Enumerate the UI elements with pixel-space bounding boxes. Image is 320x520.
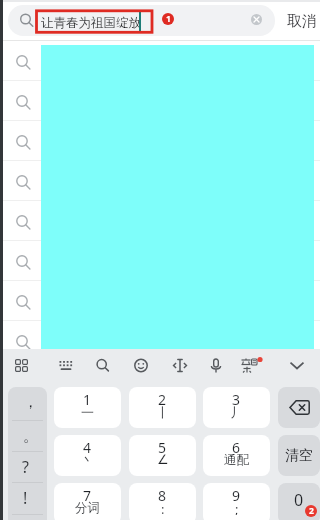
staticText: 5 xyxy=(158,438,167,454)
staticText: ? xyxy=(22,456,29,478)
button[interactable]: 清空 xyxy=(278,435,320,476)
staticText: : xyxy=(161,500,165,515)
button[interactable]: ! xyxy=(8,482,47,513)
staticText: 0 xyxy=(294,489,304,509)
button[interactable] xyxy=(81,349,120,382)
button[interactable] xyxy=(280,349,320,382)
staticText: 2 xyxy=(158,390,167,406)
button[interactable] xyxy=(278,387,320,428)
button[interactable]: ， xyxy=(8,388,47,419)
staticText: ; xyxy=(235,500,239,515)
button[interactable] xyxy=(200,349,240,382)
button[interactable] xyxy=(3,81,320,121)
staticText: 1 xyxy=(83,390,92,406)
staticText: 9 xyxy=(232,486,241,502)
button[interactable]: 4 xyxy=(54,435,121,476)
staticText: 4 xyxy=(83,438,92,454)
staticText: 1 xyxy=(166,13,171,25)
button[interactable] xyxy=(240,349,280,382)
button[interactable] xyxy=(3,349,42,382)
staticText: 清空 xyxy=(285,447,313,465)
staticText: 。 xyxy=(23,427,38,446)
staticText: 丿 xyxy=(230,404,243,419)
staticText: ! xyxy=(23,487,28,509)
button[interactable]: 9 xyxy=(203,483,270,520)
button[interactable] xyxy=(3,281,320,321)
staticText: ， xyxy=(23,393,38,412)
button[interactable]: 7 xyxy=(54,483,121,520)
staticText: 丨 xyxy=(156,404,169,419)
button[interactable] xyxy=(3,161,320,201)
staticText: 一 xyxy=(81,404,94,419)
staticText: 取消 xyxy=(287,12,317,31)
button[interactable] xyxy=(160,349,200,382)
staticText: 7 xyxy=(83,486,92,502)
button[interactable]: 6 xyxy=(203,435,270,476)
staticText: 让青春为祖国绽放 xyxy=(41,15,141,31)
button[interactable]: 0 xyxy=(278,483,320,520)
button[interactable] xyxy=(251,14,262,25)
button[interactable]: 5 xyxy=(129,435,196,476)
staticText: 2 xyxy=(309,505,314,517)
button[interactable]: ? xyxy=(8,451,47,482)
staticText: 丶 xyxy=(81,452,94,467)
button[interactable]: 2 xyxy=(129,387,196,428)
staticText: ∠ xyxy=(157,452,169,467)
button[interactable] xyxy=(3,201,320,241)
staticText: 6 xyxy=(232,438,241,454)
button[interactable]: 取消 xyxy=(282,2,320,40)
button[interactable]: 3 xyxy=(203,387,270,428)
button[interactable] xyxy=(3,121,320,161)
staticText: 分词 xyxy=(75,500,100,515)
button[interactable]: 。 xyxy=(8,419,47,450)
button[interactable]: 1 xyxy=(54,387,121,428)
button[interactable] xyxy=(3,321,320,361)
staticText: 3 xyxy=(232,390,241,406)
button[interactable] xyxy=(3,41,320,81)
button[interactable] xyxy=(8,5,275,36)
staticText: 通配 xyxy=(224,452,249,467)
button[interactable]: 8 xyxy=(129,483,196,520)
button[interactable] xyxy=(42,349,81,382)
staticText: 8 xyxy=(158,486,167,502)
button[interactable] xyxy=(3,241,320,281)
button[interactable] xyxy=(120,349,160,382)
